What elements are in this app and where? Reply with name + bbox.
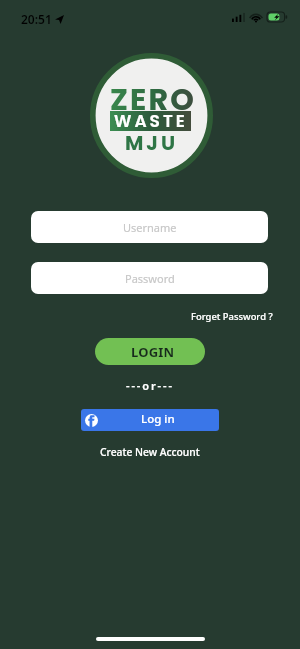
staticText: Password	[125, 271, 175, 286]
staticText: LOGIN	[131, 343, 175, 361]
staticText: Username	[123, 220, 177, 235]
staticText: 20:51	[21, 11, 52, 27]
staticText: ZERO	[110, 79, 197, 121]
staticText: WASTE	[114, 109, 188, 129]
staticText: Log in	[141, 411, 175, 427]
button[interactable]: Username	[31, 211, 268, 243]
button[interactable]: Password	[31, 262, 268, 294]
button[interactable]: Create New Account	[94, 442, 206, 462]
button[interactable]: LOGIN	[95, 338, 205, 365]
staticText: Create New Account	[100, 445, 200, 459]
staticText: Forget Password ?	[191, 310, 273, 323]
staticText: MJU	[125, 129, 179, 157]
staticText: ---or---	[126, 378, 174, 393]
button[interactable]: Forget Password ?	[187, 307, 277, 326]
button[interactable]: Log in	[81, 409, 219, 431]
